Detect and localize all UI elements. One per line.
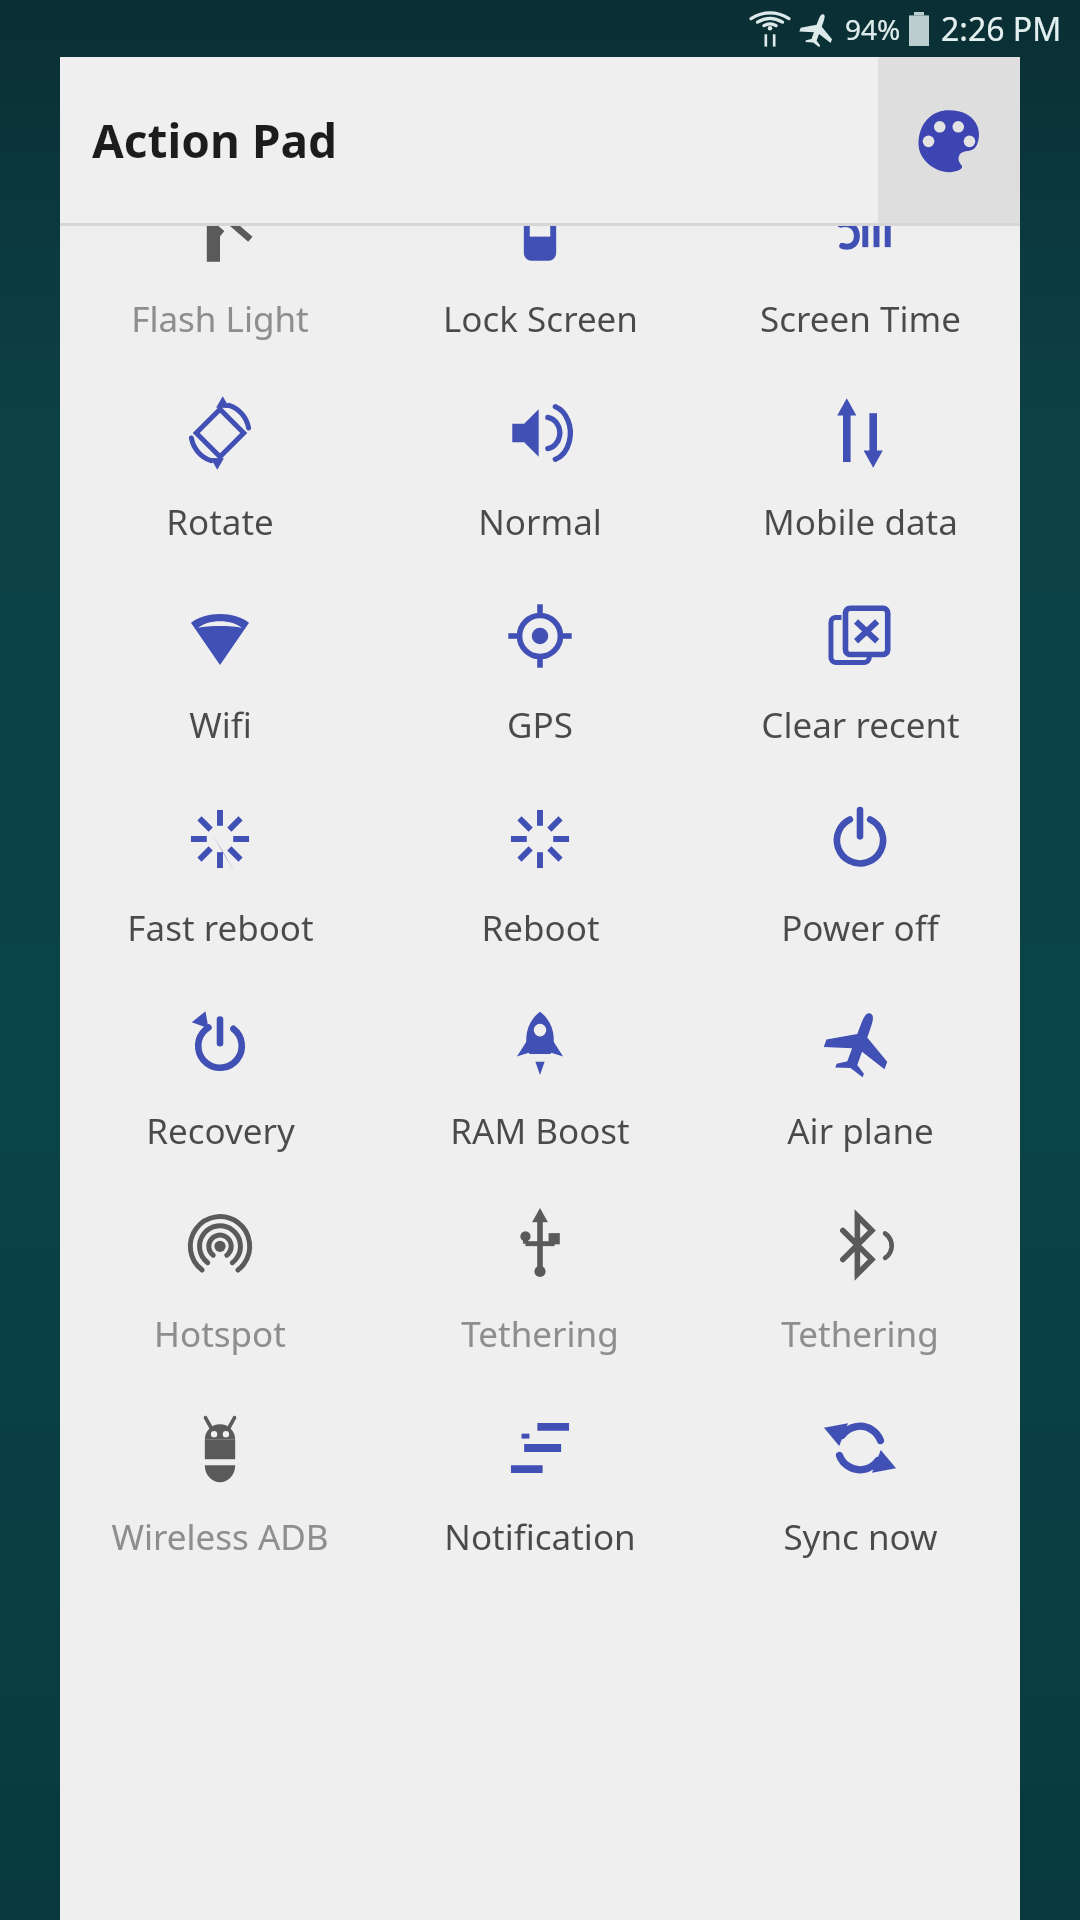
button[interactable]: GPS (380, 574, 700, 777)
staticText: Wireless ADB (111, 1513, 329, 1561)
staticText: RAM Boost (450, 1107, 630, 1155)
button[interactable]: Wifi (60, 574, 380, 777)
staticText: Wifi (189, 701, 252, 749)
staticText: GPS (507, 701, 573, 749)
button[interactable]: Notification (380, 1386, 700, 1589)
button[interactable]: Clear recent (700, 574, 1020, 777)
staticText: Notification (444, 1513, 636, 1561)
staticText: 94% (845, 10, 901, 48)
button[interactable]: Hotspot (60, 1183, 380, 1386)
button[interactable]: Mobile data (700, 371, 1020, 574)
staticText: Normal (478, 498, 602, 546)
button[interactable]: Rotate (60, 371, 380, 574)
button[interactable]: Themes (878, 57, 1020, 223)
staticText: Air plane (787, 1107, 934, 1155)
button[interactable]: Normal (380, 371, 700, 574)
staticText: Reboot (481, 904, 600, 952)
button[interactable]: Tethering (380, 1183, 700, 1386)
button[interactable]: Recovery (60, 980, 380, 1183)
staticText: Hotspot (154, 1310, 286, 1358)
staticText: Power off (781, 904, 939, 952)
staticText: Recovery (146, 1107, 295, 1155)
button[interactable]: RAM Boost (380, 980, 700, 1183)
button[interactable]: Wireless ADB (60, 1386, 380, 1589)
staticText: Rotate (166, 498, 274, 546)
button[interactable]: Screen Time (700, 226, 1020, 371)
staticText: Lock Screen (443, 295, 638, 343)
staticText: Tethering (781, 1310, 939, 1358)
button[interactable]: Air plane (700, 980, 1020, 1183)
staticText: Sync now (783, 1513, 938, 1561)
button[interactable]: Reboot (380, 777, 700, 980)
button[interactable]: Tethering (700, 1183, 1020, 1386)
staticText: Mobile data (763, 498, 958, 546)
button[interactable]: Flash Light (60, 226, 380, 371)
button[interactable]: Sync now (700, 1386, 1020, 1589)
staticText: 2:26 PM (941, 7, 1062, 51)
button[interactable]: Power off (700, 777, 1020, 980)
button[interactable]: Fast reboot (60, 777, 380, 980)
staticText: Action Pad (92, 109, 338, 172)
staticText: Flash Light (131, 295, 309, 343)
staticText: Tethering (461, 1310, 619, 1358)
staticText: Clear recent (761, 701, 960, 749)
staticText: Screen Time (760, 295, 961, 343)
staticText: Fast reboot (127, 904, 314, 952)
button[interactable]: Action Pad (60, 57, 878, 223)
button[interactable]: Lock Screen (380, 226, 700, 371)
